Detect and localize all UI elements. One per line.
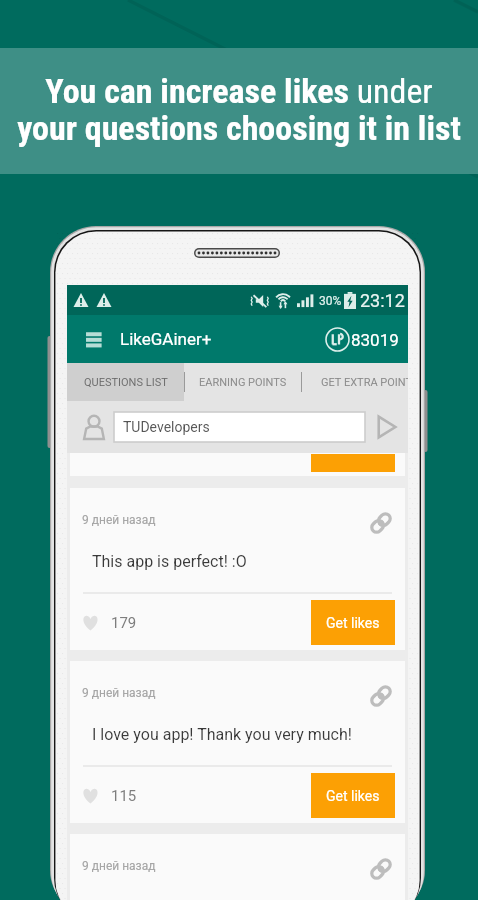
staticText: LikeGAiner+ <box>120 329 212 349</box>
button[interactable]: 9 дней назад <box>70 834 405 900</box>
staticText: This app is perfect! :O <box>92 552 247 571</box>
button[interactable]: Get likes <box>311 600 395 645</box>
staticText: GET EXTRA POINTS <box>321 376 408 389</box>
staticText: 83019 <box>351 330 399 350</box>
staticText: 179 <box>111 614 137 632</box>
staticText: 9 дней назад <box>82 686 156 700</box>
button[interactable]: Open link <box>369 511 393 535</box>
staticText: 30% <box>319 294 342 308</box>
button[interactable]: 9 дней назад <box>70 488 405 650</box>
button[interactable]: Profile <box>81 414 107 440</box>
button[interactable]: QUESTIONS LIST <box>67 363 184 401</box>
button[interactable]: Menu <box>79 326 105 352</box>
button[interactable]: GET EXTRA POINTS <box>302 363 408 401</box>
button[interactable]: Open link <box>369 684 393 708</box>
staticText: Get likes <box>326 615 380 631</box>
button[interactable]: EARNING POINTS <box>185 363 301 401</box>
staticText: 9 дней назад <box>82 859 156 873</box>
staticText: your questions choosing it in list <box>17 108 461 148</box>
staticText: 23:12 <box>360 290 405 311</box>
button[interactable]: Search <box>373 414 399 440</box>
staticText: 115 <box>111 787 137 805</box>
staticText: TUDevelopers <box>123 419 210 435</box>
staticText: QUESTIONS LIST <box>84 376 168 389</box>
button[interactable]: 83019 <box>325 327 399 352</box>
staticText: EARNING POINTS <box>199 376 287 389</box>
staticText: Get likes <box>326 788 380 804</box>
staticText: I love you app! Thank you very much! <box>92 725 352 744</box>
staticText: 9 дней назад <box>82 513 156 527</box>
button[interactable]: Get likes <box>311 773 395 818</box>
button[interactable]: TUDevelopers <box>114 412 365 442</box>
button[interactable]: 9 дней назад <box>70 661 405 823</box>
staticText: You can increase likes under <box>45 71 433 111</box>
button[interactable]: Open link <box>369 857 393 881</box>
